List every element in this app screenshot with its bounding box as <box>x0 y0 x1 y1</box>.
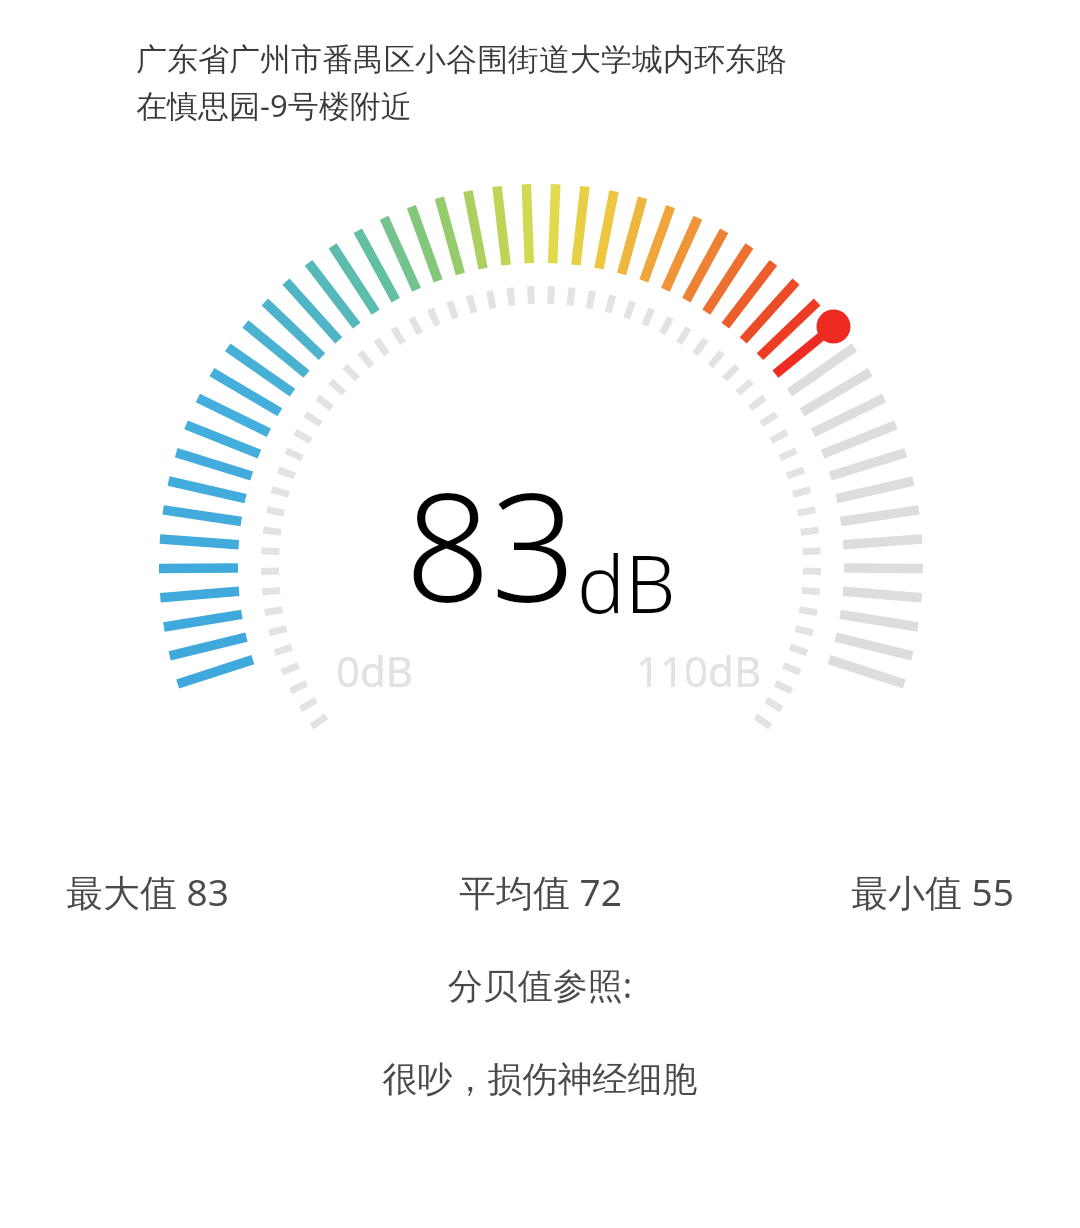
staticText: 0dB <box>336 642 414 699</box>
button[interactable]: 最小值 55 <box>851 866 1014 917</box>
staticText: 分贝值参照: <box>0 961 1080 1009</box>
button[interactable]: Decibel level gauge, 83 dB of 110 dB <box>0 184 1080 824</box>
staticText: dB <box>577 527 676 636</box>
button[interactable]: 平均值 72 <box>459 866 622 917</box>
staticText: 广东省广州市番禺区小谷围街道大学城内环东路 在慎思园-9号楼附近 <box>136 40 1040 126</box>
button[interactable]: 最大值 83 <box>66 866 229 917</box>
staticText: 很吵，损伤神经细胞 <box>0 1057 1080 1101</box>
staticText: 110dB <box>636 642 762 699</box>
staticText: 83 <box>405 442 577 646</box>
